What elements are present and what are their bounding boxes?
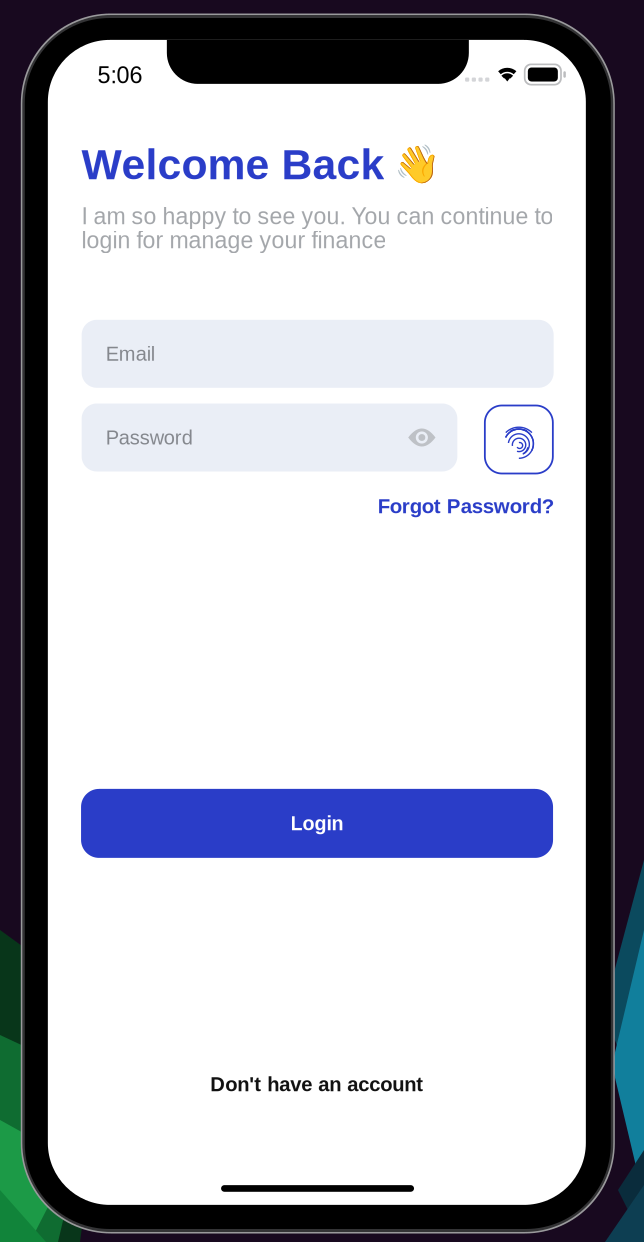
staticText: 5:06 — [97, 62, 142, 88]
staticText: Password — [106, 426, 193, 449]
staticText: Don't have an account — [210, 1073, 423, 1095]
button[interactable]: Sign in with fingerprint — [485, 405, 553, 473]
button[interactable]: Forgot Password? — [378, 495, 554, 518]
staticText: I am so happy to see you. You can contin… — [81, 204, 553, 252]
staticText: Email — [106, 343, 155, 365]
staticText: 👋 — [394, 143, 440, 186]
button[interactable]: Login — [81, 789, 553, 858]
button[interactable]: Show password — [399, 414, 445, 460]
button[interactable]: Don't have an account — [48, 1073, 586, 1095]
staticText: Forgot Password? — [378, 495, 554, 518]
staticText: Welcome Back — [81, 141, 384, 188]
staticText: Login — [291, 812, 344, 834]
